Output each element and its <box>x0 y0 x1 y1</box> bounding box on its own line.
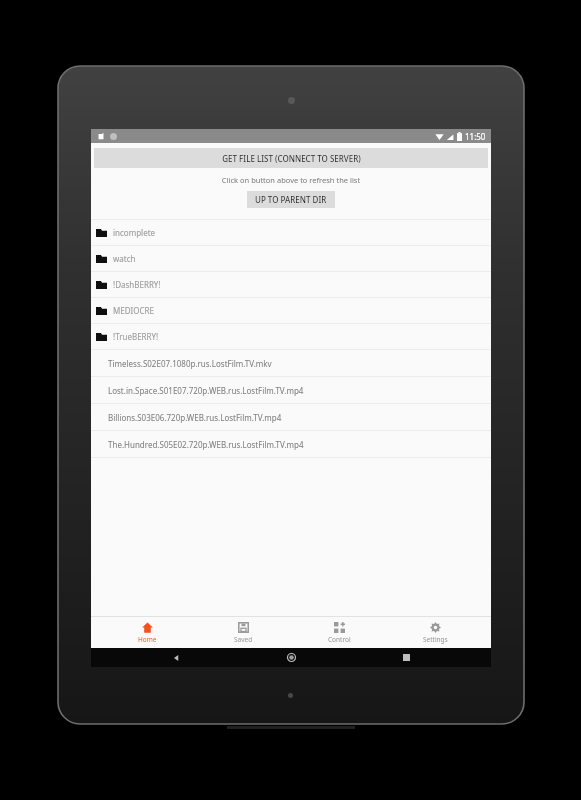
staticText: Home <box>138 635 157 644</box>
button[interactable]: UP TO PARENT DIR <box>247 191 335 208</box>
button[interactable]: Settings <box>395 617 475 648</box>
staticText: Control <box>328 635 351 644</box>
button[interactable]: Control <box>299 617 379 648</box>
staticText: GET FILE LIST (CONNECT TO SERVER) <box>222 153 361 164</box>
button[interactable]: Saved <box>203 617 283 648</box>
button[interactable]: MEDIOCRE <box>91 298 491 323</box>
button[interactable]: GET FILE LIST (CONNECT TO SERVER) <box>94 148 488 168</box>
button[interactable]: Billions.S03E06.720p.WEB.rus.LostFilm.TV… <box>91 404 491 430</box>
button[interactable]: watch <box>91 246 491 271</box>
button[interactable]: Home <box>107 617 187 648</box>
staticText: watch <box>113 253 136 264</box>
staticText: UP TO PARENT DIR <box>255 194 327 205</box>
button[interactable]: The.Hundred.S05E02.720p.WEB.rus.LostFilm… <box>91 431 491 457</box>
button[interactable]: Recent apps <box>376 648 436 667</box>
staticText: Click on button above to refresh the lis… <box>91 175 491 185</box>
staticText: MEDIOCRE <box>113 305 154 316</box>
staticText: Timeless.S02E07.1080p.rus.LostFilm.TV.mk… <box>108 358 272 369</box>
button[interactable]: Back <box>146 648 206 667</box>
button[interactable]: Home <box>261 648 321 667</box>
button[interactable]: incomplete <box>91 220 491 245</box>
staticText: Saved <box>234 635 253 644</box>
staticText: Settings <box>423 635 448 644</box>
staticText: Lost.in.Space.S01E07.720p.WEB.rus.LostFi… <box>108 385 304 396</box>
staticText: 11:50 <box>465 131 486 142</box>
staticText: Billions.S03E06.720p.WEB.rus.LostFilm.TV… <box>108 412 282 423</box>
staticText: !TrueBERRY! <box>113 331 159 342</box>
staticText: !DashBERRY! <box>113 279 161 290</box>
staticText: incomplete <box>113 227 156 238</box>
button[interactable]: !DashBERRY! <box>91 272 491 297</box>
button[interactable]: Timeless.S02E07.1080p.rus.LostFilm.TV.mk… <box>91 350 491 376</box>
button[interactable]: Lost.in.Space.S01E07.720p.WEB.rus.LostFi… <box>91 377 491 403</box>
button[interactable]: !TrueBERRY! <box>91 324 491 349</box>
staticText: The.Hundred.S05E02.720p.WEB.rus.LostFilm… <box>108 439 304 450</box>
